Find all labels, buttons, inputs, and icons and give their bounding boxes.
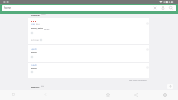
- staticText: home, hotel: [31, 27, 43, 30]
- staticText: 예문: [41, 86, 44, 88]
- button[interactable]: 고양: [31, 23, 40, 25]
- staticText: See more Meanings: [129, 79, 147, 82]
- button[interactable]: Bookmark: [145, 47, 149, 51]
- button[interactable]: Share: [133, 92, 139, 98]
- staticText: 고양: [31, 23, 35, 25]
- button[interactable]: Voice search: [160, 5, 166, 11]
- button[interactable]: Search: [168, 5, 174, 11]
- button[interactable]: Recents: [11, 92, 16, 97]
- staticText: 명사: [36, 23, 40, 25]
- staticText: 내부의: [31, 48, 37, 50]
- button[interactable]: Clear: [152, 5, 158, 11]
- button[interactable]: Examples: [31, 86, 44, 88]
- staticText: 다의어: [41, 14, 46, 16]
- button[interactable]: See more Meanings: [129, 79, 147, 82]
- staticText: 가정의: [31, 64, 37, 66]
- button[interactable]: Favorites: [105, 92, 111, 98]
- button[interactable]: 가정의: [31, 64, 37, 66]
- button[interactable]: Settings: [162, 92, 168, 98]
- staticText: home: [4, 6, 12, 10]
- staticText: Meanings: [31, 14, 40, 16]
- button[interactable]: 내부의: [31, 48, 37, 50]
- button[interactable]: Scroll to top: [167, 84, 173, 89]
- button[interactable]: Bookmark: [145, 65, 149, 69]
- staticText: house: [44, 28, 50, 30]
- staticText: home: [31, 67, 37, 70]
- staticText: home: [31, 51, 37, 54]
- button[interactable]: home: [2, 5, 176, 11]
- button[interactable]: Meanings: [31, 14, 46, 16]
- staticText: 주거 고양: [31, 39, 39, 41]
- button[interactable]: Bookmark: [145, 21, 149, 25]
- staticText: Examples: [31, 86, 40, 88]
